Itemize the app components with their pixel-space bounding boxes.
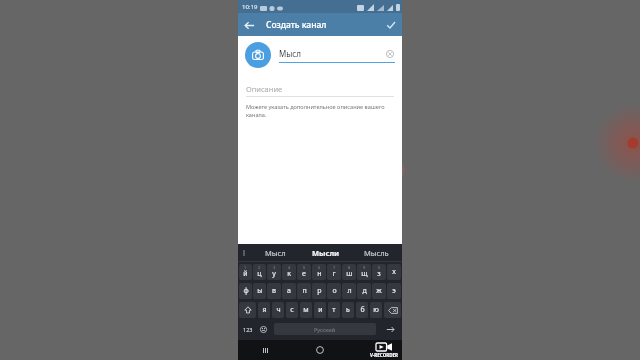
- button[interactable]: а: [282, 283, 296, 299]
- button[interactable]: 3: [267, 264, 281, 280]
- button[interactable]: ю: [370, 302, 382, 318]
- button[interactable]: Key: [239, 302, 256, 318]
- staticText: ц: [257, 269, 262, 279]
- staticText: е: [302, 269, 306, 279]
- button[interactable]: Back: [238, 14, 260, 36]
- staticText: Русский: [314, 326, 336, 333]
- button[interactable]: Русский: [274, 323, 376, 335]
- staticText: п: [302, 286, 307, 296]
- staticText: Создать канал: [266, 19, 327, 31]
- button[interactable]: 7: [327, 264, 341, 280]
- button[interactable]: б: [356, 302, 368, 318]
- staticText: в: [272, 286, 276, 296]
- staticText: х: [392, 267, 396, 277]
- button[interactable]: Done: [380, 14, 402, 36]
- staticText: 0: [378, 265, 381, 270]
- staticText: м: [303, 305, 309, 315]
- staticText: я: [262, 305, 267, 315]
- button[interactable]: 5: [297, 264, 311, 280]
- staticText: 5: [303, 265, 306, 270]
- staticText: Мысл: [265, 248, 286, 258]
- staticText: 6: [318, 265, 321, 270]
- staticText: щ: [361, 269, 368, 279]
- staticText: с: [290, 305, 294, 315]
- button[interactable]: д: [357, 283, 371, 299]
- staticText: н: [317, 269, 322, 279]
- button[interactable]: х: [387, 264, 401, 280]
- button[interactable]: 1: [239, 264, 252, 280]
- button[interactable]: э: [387, 283, 401, 299]
- staticText: й: [243, 269, 248, 279]
- staticText: 9: [363, 265, 366, 270]
- button[interactable]: ж: [372, 283, 386, 299]
- button[interactable]: 8: [342, 264, 356, 280]
- staticText: 4: [288, 265, 291, 270]
- button[interactable]: 4: [282, 264, 296, 280]
- staticText: г: [332, 269, 336, 279]
- staticText: 7: [333, 265, 336, 270]
- staticText: б: [360, 305, 365, 315]
- button[interactable]: л: [342, 283, 356, 299]
- staticText: к: [287, 269, 291, 279]
- button[interactable]: с: [286, 302, 298, 318]
- staticText: 10:19: [242, 3, 258, 11]
- button[interactable]: Мысли: [300, 244, 351, 261]
- button[interactable]: р: [312, 283, 326, 299]
- button[interactable]: о: [327, 283, 341, 299]
- button[interactable]: ь: [342, 302, 354, 318]
- button[interactable]: 6: [312, 264, 326, 280]
- button[interactable]: ы: [253, 283, 266, 299]
- staticText: ж: [376, 286, 382, 296]
- button[interactable]: Emoji: [256, 321, 270, 337]
- staticText: Мысл: [279, 48, 384, 59]
- staticText: а: [287, 286, 291, 296]
- staticText: р: [317, 286, 322, 296]
- staticText: ь: [346, 305, 350, 315]
- button[interactable]: Мысл: [250, 244, 300, 261]
- staticText: Мысли: [312, 248, 340, 258]
- staticText: ы: [257, 286, 263, 296]
- button[interactable]: 2: [253, 264, 266, 280]
- button[interactable]: в: [267, 283, 281, 299]
- button[interactable]: т: [328, 302, 340, 318]
- button[interactable]: ф: [239, 283, 252, 299]
- button[interactable]: 9: [357, 264, 371, 280]
- staticText: 2: [258, 265, 261, 270]
- staticText: 1: [244, 265, 247, 270]
- staticText: 3: [273, 265, 276, 270]
- button[interactable]: 123: [240, 321, 256, 337]
- button[interactable]: Home: [310, 340, 330, 360]
- button[interactable]: Enter: [380, 321, 400, 337]
- staticText: л: [347, 286, 352, 296]
- staticText: V-RECORDER: [370, 352, 398, 358]
- button[interactable]: м: [300, 302, 312, 318]
- staticText: и: [318, 305, 323, 315]
- button[interactable]: Key: [384, 302, 401, 318]
- staticText: ф: [243, 286, 249, 296]
- staticText: Описание: [246, 84, 283, 94]
- staticText: Можете указать дополнительное описание в…: [246, 103, 394, 119]
- button[interactable]: 0: [372, 264, 386, 280]
- staticText: у: [272, 269, 276, 279]
- button[interactable]: п: [297, 283, 311, 299]
- staticText: з: [377, 269, 381, 279]
- staticText: д: [362, 286, 367, 296]
- staticText: о: [332, 286, 337, 296]
- button[interactable]: Recents: [255, 340, 275, 360]
- staticText: ч: [276, 305, 281, 315]
- button[interactable]: Expand suggestions: [238, 244, 250, 261]
- staticText: 123: [243, 326, 253, 333]
- button[interactable]: Мысль: [351, 244, 402, 261]
- staticText: 8: [348, 265, 351, 270]
- button[interactable]: ч: [272, 302, 284, 318]
- staticText: Мысль: [364, 248, 389, 258]
- staticText: т: [332, 305, 336, 315]
- staticText: ю: [373, 305, 379, 315]
- button[interactable]: и: [314, 302, 326, 318]
- staticText: э: [392, 286, 396, 296]
- button[interactable]: Set channel photo: [245, 42, 271, 68]
- staticText: ш: [346, 269, 353, 279]
- button[interactable]: Clear: [384, 48, 395, 59]
- button[interactable]: я: [258, 302, 270, 318]
